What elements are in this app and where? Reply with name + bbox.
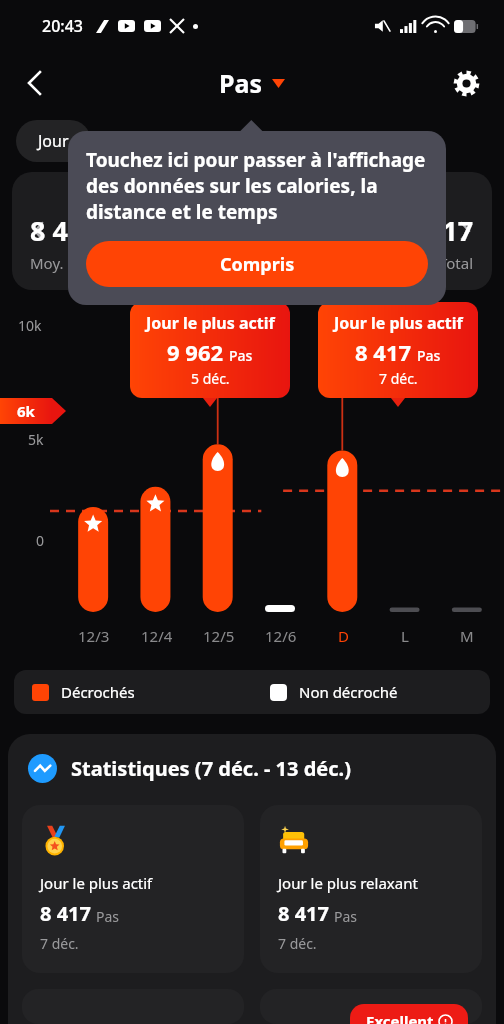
button[interactable]: Jour le plus actif — [318, 302, 478, 398]
staticText: 10k — [18, 316, 42, 335]
staticText: Statistiques (7 déc. - 13 déc.) — [71, 755, 351, 782]
button[interactable]: Jour — [16, 120, 91, 162]
staticText: 7 déc. — [278, 934, 317, 953]
staticText: 8 417 — [30, 212, 99, 249]
staticText: Total — [439, 253, 474, 273]
staticText: 12/4 — [141, 626, 173, 646]
staticText: 0 — [36, 531, 45, 550]
staticText: 58 917 — [389, 212, 474, 249]
staticText: Jour le plus actif — [146, 312, 275, 334]
button[interactable]: Pas — [219, 66, 285, 100]
staticText: Compris — [220, 252, 295, 277]
staticText: M — [460, 626, 474, 646]
staticText: Touchez ici pour passer à l'affichage de… — [86, 147, 428, 225]
staticText: 8 417 — [278, 900, 329, 927]
staticText: 20:43 — [42, 15, 83, 37]
staticText: 8 417 — [40, 900, 91, 927]
staticText: 12/6 — [265, 626, 297, 646]
staticText: Jour le plus relaxant — [278, 873, 418, 893]
staticText: Pas — [334, 907, 358, 926]
button[interactable]: Back — [12, 59, 60, 107]
staticText: L — [401, 626, 409, 646]
staticText: Pas — [96, 907, 120, 926]
button[interactable]: Next — [442, 208, 488, 254]
staticText: 7 déc. — [379, 369, 418, 388]
staticText: Jour le plus actif — [40, 873, 153, 893]
staticText: 12/3 — [78, 626, 110, 646]
button[interactable]: Settings — [442, 59, 490, 107]
staticText: 12/5 — [203, 626, 235, 646]
button[interactable]: Jour le plus actif — [130, 302, 290, 398]
staticText: Jour le plus actif — [334, 312, 463, 334]
button[interactable]: Jour le plus relaxant — [260, 805, 482, 973]
button[interactable]: Jour le plus actif — [22, 805, 244, 973]
staticText: Pas — [229, 346, 253, 365]
staticText: Moy. — [30, 253, 64, 273]
staticText: 7 déc. — [40, 934, 79, 953]
staticText: Décrochés — [61, 682, 135, 702]
staticText: 5 déc. — [191, 369, 230, 388]
staticText: 6k — [17, 401, 35, 421]
staticText: Pas — [417, 346, 441, 365]
staticText: Excellent — [366, 1011, 434, 1024]
staticText: D — [338, 626, 349, 646]
staticText: 9 962 — [167, 337, 224, 367]
button[interactable]: Excellent — [350, 1004, 468, 1024]
staticText: 8 417 — [355, 337, 412, 367]
staticText: Pas — [219, 66, 263, 100]
staticText: Jour — [38, 130, 69, 152]
staticText: Non décroché — [299, 682, 398, 702]
button[interactable]: Compris — [86, 241, 428, 287]
staticText: 5k — [28, 430, 44, 449]
button[interactable]: Previous — [16, 208, 62, 254]
